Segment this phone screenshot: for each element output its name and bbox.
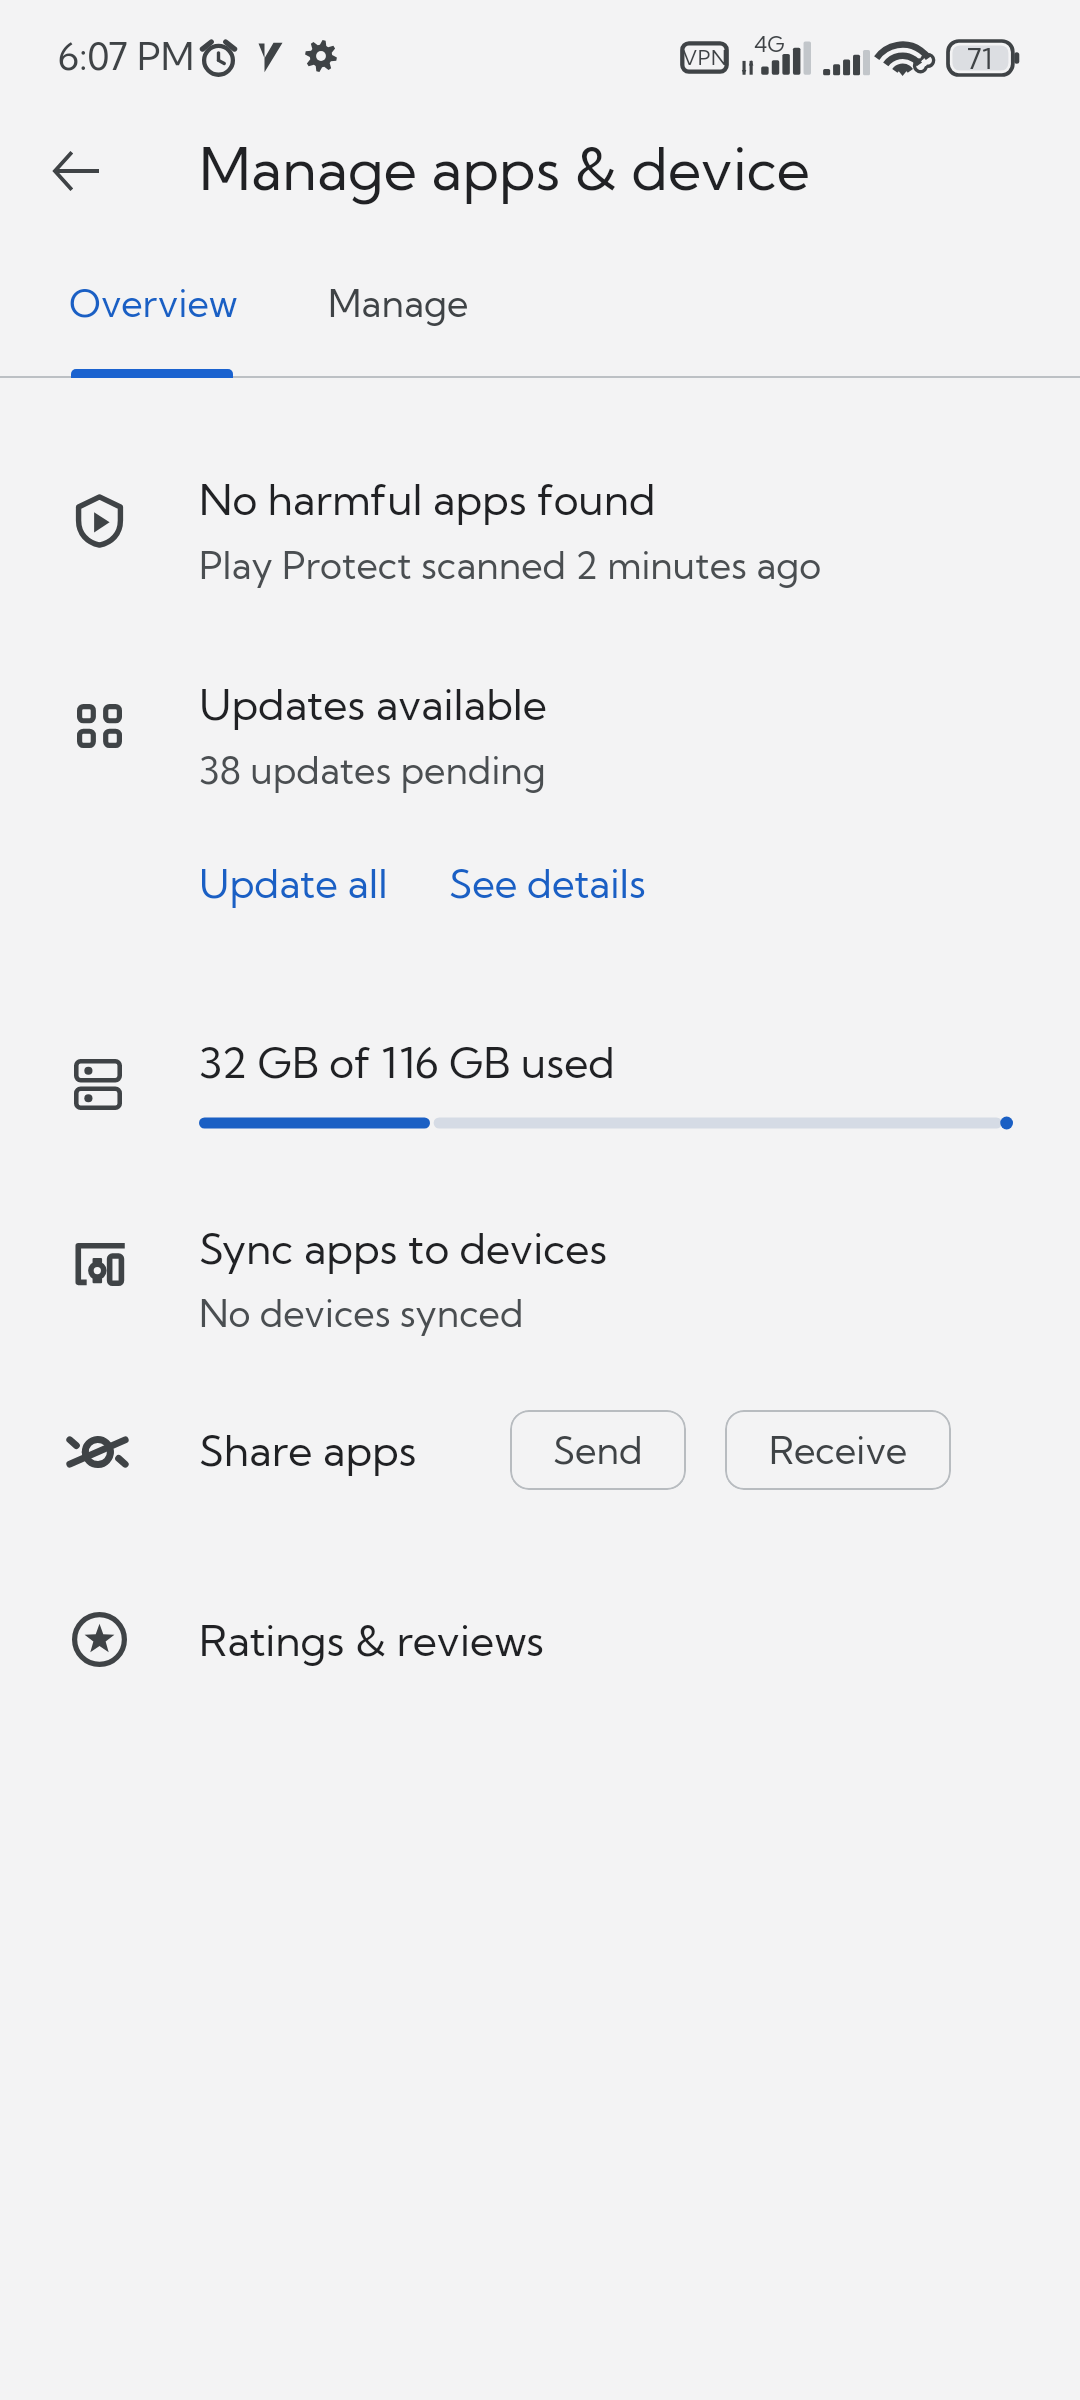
- button[interactable]: Update all: [199, 844, 388, 918]
- staticText: Updates available: [199, 678, 547, 731]
- button[interactable]: Send: [510, 1410, 686, 1490]
- staticText: No harmful apps found: [199, 473, 656, 526]
- staticText: Sync apps to devices: [199, 1222, 608, 1275]
- button[interactable]: Updates available: [0, 655, 1080, 807]
- button[interactable]: No harmful apps found: [0, 450, 1080, 602]
- staticText: Overview: [69, 280, 238, 327]
- button[interactable]: Back: [27, 122, 125, 220]
- staticText: No devices synced: [199, 1290, 524, 1337]
- staticText: Send: [553, 1427, 643, 1474]
- staticText: Share apps: [199, 1424, 417, 1477]
- staticText: Update all: [199, 859, 388, 908]
- staticText: 4G: [754, 31, 785, 58]
- staticText: Manage: [328, 280, 469, 327]
- button[interactable]: Manage: [260, 258, 530, 378]
- button[interactable]: Sync apps to devices: [0, 1199, 1080, 1351]
- button[interactable]: See details: [449, 844, 646, 918]
- button[interactable]: Receive: [725, 1410, 951, 1490]
- staticText: Manage apps & device: [199, 133, 810, 205]
- staticText: Play Protect scanned 2 minutes ago: [199, 542, 822, 589]
- staticText: 38 updates pending: [199, 747, 546, 794]
- button[interactable]: Overview: [0, 258, 236, 378]
- button[interactable]: 32 GB of 116 GB used: [0, 1013, 1080, 1159]
- staticText: 32 GB of 116 GB used: [199, 1036, 615, 1089]
- staticText: See details: [449, 859, 646, 908]
- staticText: 71: [967, 41, 993, 75]
- staticText: Ratings & reviews: [199, 1614, 545, 1667]
- button[interactable]: Ratings & reviews: [0, 1578, 1080, 1698]
- button[interactable]: Share apps: [60, 1388, 480, 1512]
- staticText: 6:07 PM: [58, 33, 195, 80]
- staticText: VPN: [682, 45, 728, 70]
- staticText: Receive: [769, 1427, 908, 1474]
